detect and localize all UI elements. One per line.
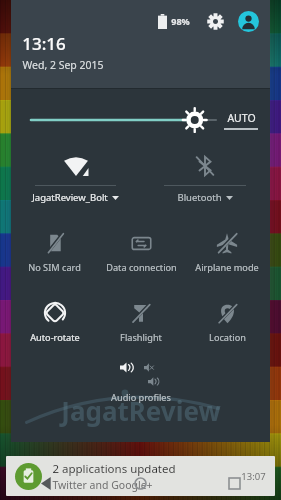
staticText: Flashlight: [120, 331, 162, 344]
staticText: Bluetooth: [177, 191, 222, 204]
button[interactable]: Home: [93, 466, 187, 500]
staticText: Twitter and Google+: [52, 478, 153, 492]
button[interactable]: No SIM card: [11, 227, 98, 285]
staticText: 13:16: [22, 32, 66, 55]
button[interactable]: Bluetooth: [140, 151, 270, 204]
button[interactable]: Recent apps: [187, 466, 281, 500]
button[interactable]: AUTO: [224, 111, 258, 130]
staticText: JagatReview_Bolt: [32, 191, 108, 204]
button[interactable]: Back: [0, 466, 93, 500]
button[interactable]: Audio profiles: [11, 361, 270, 404]
staticText: Location: [209, 331, 246, 344]
staticText: JagatReview: [61, 393, 221, 428]
button[interactable]: Auto-rotate: [11, 297, 98, 355]
staticText: AUTO: [227, 111, 256, 125]
staticText: 98%: [171, 15, 190, 27]
staticText: Auto-rotate: [30, 331, 80, 344]
staticText: Airplane mode: [195, 261, 259, 274]
button[interactable]: Flashlight: [98, 297, 184, 355]
staticText: No SIM card: [28, 261, 81, 274]
button[interactable]: 2 applications updated: [6, 456, 275, 496]
button[interactable]: Wi-Fi: [11, 151, 140, 204]
button[interactable]: Location: [184, 297, 270, 355]
staticText: Wed, 2 Sep 2015: [22, 58, 104, 72]
button[interactable]: User profile: [236, 9, 260, 33]
staticText: 2 applications updated: [52, 461, 176, 477]
button[interactable]: Brightness: [31, 103, 216, 137]
button[interactable]: Airplane mode: [184, 227, 270, 285]
staticText: Data connection: [106, 261, 177, 274]
staticText: 13:07: [241, 470, 266, 483]
button[interactable]: Data connection: [98, 227, 184, 285]
button[interactable]: Settings: [203, 9, 227, 33]
staticText: Audio profiles: [111, 391, 171, 404]
